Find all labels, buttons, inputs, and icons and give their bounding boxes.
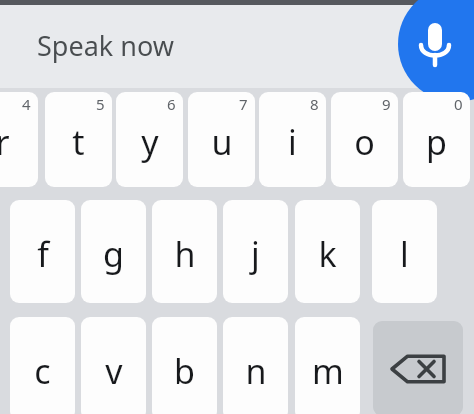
- button[interactable]: u: [188, 92, 255, 187]
- button[interactable]: i: [259, 92, 326, 187]
- staticText: 4: [22, 94, 31, 114]
- button[interactable]: n: [223, 317, 288, 414]
- button[interactable]: p: [403, 92, 470, 187]
- staticText: g: [103, 231, 124, 277]
- staticText: y: [141, 119, 159, 165]
- button[interactable]: t: [45, 92, 112, 187]
- button[interactable]: b: [152, 317, 217, 414]
- staticText: 5: [96, 94, 105, 114]
- staticText: j: [251, 231, 260, 277]
- staticText: 9: [382, 94, 391, 114]
- button[interactable]: g: [81, 200, 146, 303]
- staticText: Speak now: [37, 27, 174, 64]
- staticText: c: [34, 348, 51, 394]
- staticText: 6: [167, 94, 176, 114]
- staticText: 0: [454, 94, 463, 114]
- button[interactable]: k: [295, 200, 360, 303]
- button[interactable]: l: [372, 200, 437, 303]
- staticText: m: [312, 348, 344, 394]
- button[interactable]: Backspace: [373, 321, 463, 414]
- button[interactable]: m: [295, 317, 360, 414]
- staticText: 7: [239, 94, 248, 114]
- button[interactable]: c: [10, 317, 75, 414]
- staticText: 8: [310, 94, 319, 114]
- button[interactable]: o: [331, 92, 398, 187]
- staticText: v: [105, 348, 123, 394]
- staticText: b: [174, 348, 195, 394]
- button[interactable]: y: [116, 92, 183, 187]
- staticText: n: [245, 348, 267, 394]
- staticText: f: [37, 231, 49, 277]
- staticText: h: [174, 231, 196, 277]
- staticText: o: [354, 119, 375, 165]
- button[interactable]: f: [10, 200, 75, 303]
- staticText: u: [211, 119, 233, 165]
- staticText: t: [72, 119, 85, 165]
- button[interactable]: j: [223, 200, 288, 303]
- button[interactable]: h: [152, 200, 217, 303]
- staticText: k: [318, 231, 337, 277]
- staticText: r: [0, 119, 10, 165]
- staticText: i: [288, 119, 297, 165]
- staticText: p: [426, 119, 447, 165]
- staticText: l: [400, 231, 409, 277]
- button[interactable]: Voice input: [396, 0, 474, 89]
- button[interactable]: r: [0, 92, 38, 187]
- button[interactable]: v: [81, 317, 146, 414]
